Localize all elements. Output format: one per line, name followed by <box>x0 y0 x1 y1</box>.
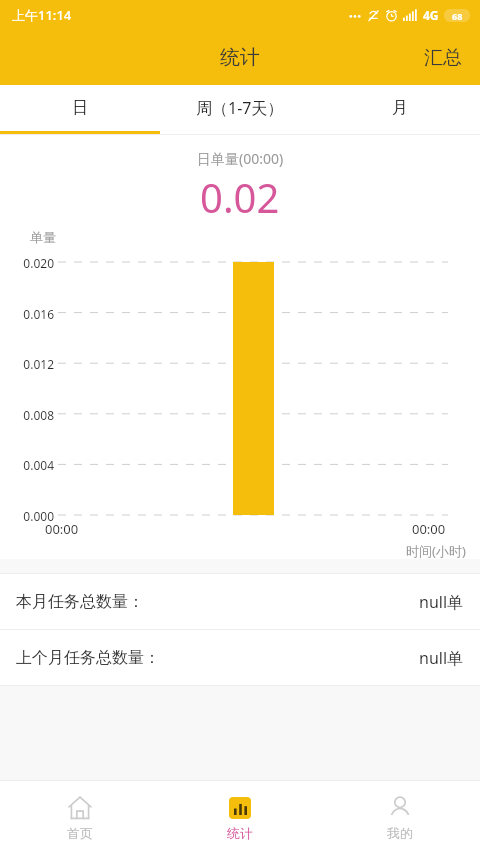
staticText: 日单量(00:00) <box>197 149 284 168</box>
staticText: 统计 <box>220 45 260 70</box>
staticText: 00:00 <box>412 520 446 538</box>
staticText: 0.016 <box>4 306 54 322</box>
button[interactable]: 首页 <box>0 781 160 853</box>
button[interactable]: 周（1-7天） <box>160 85 320 131</box>
button[interactable]: 本月任务总数量： <box>0 574 480 629</box>
staticText: 4G <box>423 7 439 23</box>
staticText: 周（1-7天） <box>196 97 284 119</box>
staticText: 上午11:14 <box>12 6 72 24</box>
staticText: 日 <box>72 98 88 118</box>
staticText: 汇总 <box>424 46 462 70</box>
staticText: 68 <box>452 10 463 22</box>
staticText: 0.004 <box>4 457 54 473</box>
button[interactable]: 月 <box>320 85 480 131</box>
staticText: 我的 <box>387 825 413 841</box>
staticText: 月 <box>392 98 408 118</box>
staticText: 0.008 <box>4 407 54 423</box>
staticText: 0.02 <box>200 170 280 224</box>
button[interactable]: 我的 <box>320 781 480 853</box>
staticText: 0.000 <box>4 508 54 524</box>
button[interactable]: 统计 <box>160 781 320 853</box>
staticText: 本月任务总数量： <box>16 592 144 612</box>
staticText: 上个月任务总数量： <box>16 648 160 668</box>
staticText: null单 <box>419 591 464 613</box>
button[interactable]: 汇总 <box>406 30 480 85</box>
staticText: null单 <box>419 647 464 669</box>
staticText: 统计 <box>227 825 253 841</box>
button[interactable]: 日 <box>0 85 160 131</box>
staticText: 时间(小时) <box>406 542 466 560</box>
staticText: 单量 <box>30 229 56 245</box>
staticText: 首页 <box>67 825 93 841</box>
staticText: 00:00 <box>45 520 79 538</box>
button[interactable]: 上个月任务总数量： <box>0 630 480 685</box>
staticText: 0.012 <box>4 356 54 372</box>
staticText: 0.020 <box>4 255 54 271</box>
